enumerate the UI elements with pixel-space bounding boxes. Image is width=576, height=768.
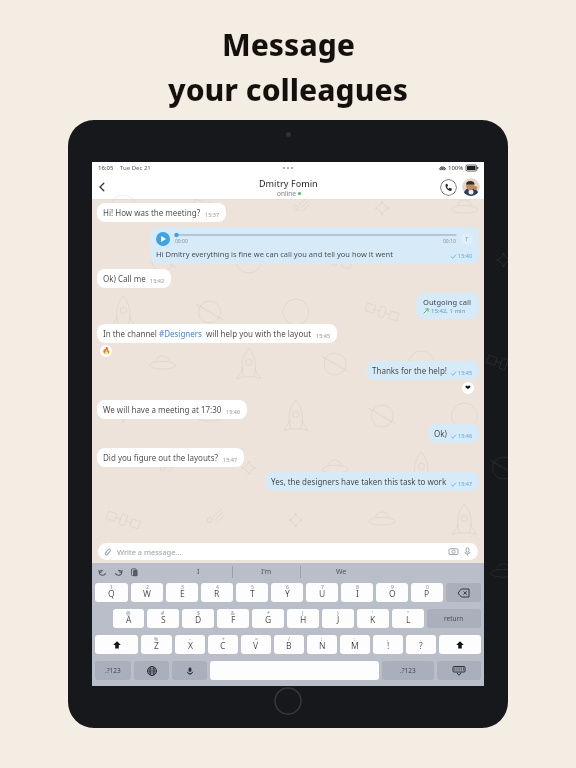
button[interactable]: Write a message...: [98, 543, 478, 560]
staticText: 3: [181, 584, 184, 591]
button[interactable]: Redo: [114, 568, 123, 577]
button[interactable]: 0: [411, 583, 443, 602]
button[interactable]: Hi! How was the meeting?: [97, 203, 226, 222]
staticText: Q: [108, 588, 115, 600]
button[interactable]: Profile: [462, 178, 480, 196]
button[interactable]: In the channel #Designers will help you …: [97, 324, 337, 343]
staticText: W: [143, 588, 151, 600]
staticText: B: [286, 640, 292, 652]
button[interactable]: #: [147, 609, 179, 628]
staticText: 15:46: [458, 432, 473, 439]
button[interactable]: Paste: [130, 568, 139, 577]
staticText: -: [189, 636, 191, 643]
button[interactable]: Thanks for the help!: [366, 361, 479, 380]
button[interactable]: ,: [373, 635, 403, 654]
staticText: 8: [356, 584, 359, 591]
button[interactable]: I'm: [233, 563, 300, 581]
button[interactable]: 8: [341, 583, 373, 602]
staticText: 🔥: [102, 347, 111, 355]
button[interactable]: +: [208, 635, 238, 654]
staticText: ": [407, 610, 410, 617]
button[interactable]: Ok) Call me: [97, 269, 171, 288]
staticText: U: [319, 588, 326, 600]
button[interactable]: Yes, the designers have taken this task …: [265, 472, 479, 491]
staticText: return: [444, 614, 464, 623]
button[interactable]: (: [287, 609, 319, 628]
button[interactable]: Shift: [439, 635, 481, 654]
staticText: 00:00: [175, 238, 188, 245]
button[interactable]: 5: [236, 583, 268, 602]
button[interactable]: ): [322, 609, 354, 628]
button[interactable]: .?123: [382, 661, 434, 680]
button[interactable]: We: [301, 563, 381, 581]
button[interactable]: Dictate: [172, 661, 207, 680]
staticText: ❤️: [465, 384, 471, 392]
staticText: C: [220, 640, 226, 652]
staticText: T: [250, 588, 255, 600]
other: Camera: [449, 547, 458, 556]
button[interactable]: Transcribe: [461, 233, 473, 245]
staticText: 2: [146, 584, 149, 591]
staticText: J: [337, 614, 340, 626]
button[interactable]: ​.?123: [95, 661, 131, 680]
button[interactable]: Hide keyboard: [437, 661, 481, 680]
staticText: T: [465, 235, 469, 243]
staticText: In the channel #Designers will help you …: [103, 328, 312, 339]
button[interactable]: Shift: [95, 635, 138, 654]
button[interactable]: %: [141, 635, 172, 654]
button[interactable]: .: [406, 635, 436, 654]
button[interactable]: 1: [95, 583, 128, 602]
staticText: 7: [321, 584, 324, 591]
button[interactable]: return: [427, 609, 481, 628]
button[interactable]: -: [175, 635, 205, 654]
button[interactable]: Play: [150, 227, 479, 264]
button[interactable]: We will have a meeting at 17:30: [97, 400, 247, 419]
button[interactable]: &: [217, 609, 249, 628]
button[interactable]: Did you figure out the layouts?: [97, 448, 244, 467]
button[interactable]: ;: [307, 635, 337, 654]
button[interactable]: 🔥: [100, 345, 112, 357]
staticText: &: [231, 610, 235, 617]
staticText: M: [351, 640, 359, 652]
button[interactable]: Undo: [98, 568, 107, 577]
staticText: N: [319, 640, 326, 652]
button[interactable]: Backspace: [446, 583, 481, 602]
button[interactable]: 2: [131, 583, 163, 602]
staticText: D: [195, 614, 202, 626]
button[interactable]: 6: [271, 583, 303, 602]
button[interactable]: ": [392, 609, 424, 628]
button[interactable]: Ok): [428, 424, 479, 443]
button[interactable]: 7: [306, 583, 338, 602]
staticText: /: [288, 636, 290, 643]
staticText: H: [300, 614, 307, 626]
staticText: Yes, the designers have taken this task …: [271, 476, 447, 487]
staticText: 15:45: [316, 332, 331, 339]
button[interactable]: =: [241, 635, 271, 654]
staticText: your colleagues: [168, 69, 408, 110]
button[interactable]: Outgoing call: [416, 293, 479, 319]
button[interactable]: Back: [92, 177, 112, 197]
button[interactable]: Play: [156, 232, 170, 246]
staticText: @: [126, 610, 131, 617]
button[interactable]: I: [165, 563, 232, 581]
staticText: *: [267, 610, 270, 617]
button[interactable]: $: [182, 609, 214, 628]
staticText: 4: [216, 584, 219, 591]
button[interactable]: ❤️: [462, 382, 474, 394]
button[interactable]: ': [357, 609, 389, 628]
staticText: I'm: [261, 567, 272, 577]
button[interactable]: :: [340, 635, 370, 654]
button[interactable]: Language: [134, 661, 169, 680]
staticText: Hi! How was the meeting?: [103, 207, 201, 218]
button[interactable]: Call: [440, 179, 457, 196]
button[interactable]: *: [252, 609, 284, 628]
button[interactable]: 4: [201, 583, 233, 602]
button[interactable]: 3: [166, 583, 198, 602]
other: Voice message: [463, 547, 472, 556]
button[interactable]: /: [274, 635, 304, 654]
staticText: Hi Dmitry everything is fine we can call…: [156, 249, 451, 259]
button[interactable]: 9: [376, 583, 408, 602]
staticText: 5: [251, 584, 254, 591]
button[interactable]: @: [113, 609, 144, 628]
